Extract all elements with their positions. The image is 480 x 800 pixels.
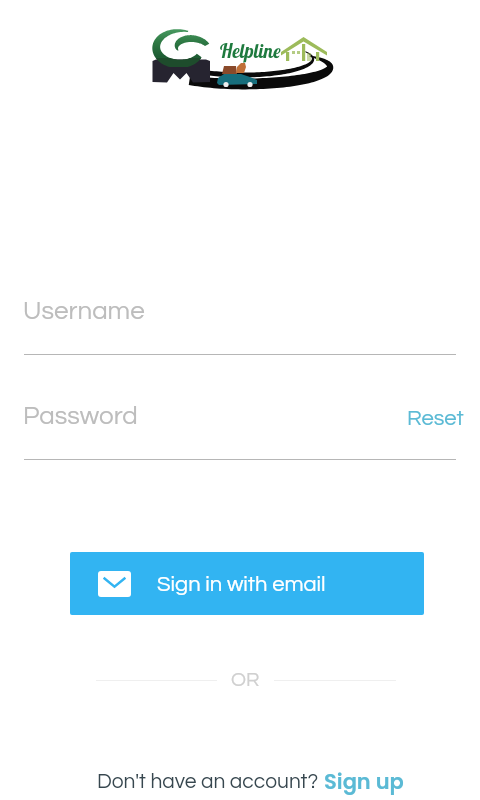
button[interactable]: Reset [398,400,464,436]
staticText: OR [231,670,260,691]
staticText: Sign in with email [157,573,326,596]
staticText: Don't have an account? [97,771,323,793]
staticText: Password [23,403,138,430]
staticText: Sign up [324,767,404,796]
button[interactable]: Sign in with email [70,552,424,615]
button[interactable]: Password [24,391,394,460]
button[interactable]: Sign up [323,767,405,796]
staticText: Username [23,298,145,325]
staticText: Reset [407,407,464,430]
button[interactable]: Username [24,286,456,355]
staticText: Helpline [219,39,281,63]
